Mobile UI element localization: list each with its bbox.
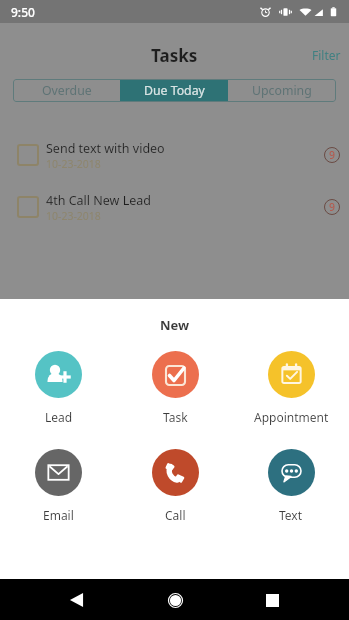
- staticText: Send text with video: [46, 140, 165, 157]
- button[interactable]: Filter: [304, 47, 349, 63]
- staticText: New: [0, 316, 349, 334]
- button[interactable]: Lead: [0, 351, 117, 425]
- button[interactable]: Call: [117, 449, 233, 523]
- staticText: Call: [165, 507, 186, 523]
- staticText: 10-23-2018: [46, 157, 101, 171]
- staticText: 4th Call New Lead: [46, 192, 151, 209]
- button[interactable]: Home: [161, 586, 189, 614]
- button[interactable]: 4th Call New Lead: [0, 181, 349, 233]
- staticText: Overdue: [42, 82, 92, 99]
- staticText: Tasks: [151, 44, 198, 67]
- staticText: Lead: [45, 409, 73, 425]
- staticText: 9: [329, 200, 336, 214]
- button[interactable]: Send text with video: [0, 129, 349, 181]
- button[interactable]: Task: [117, 351, 233, 425]
- staticText: Appointment: [254, 409, 329, 425]
- button[interactable]: Overdue: [13, 79, 120, 102]
- button[interactable]: Recent apps: [258, 586, 286, 614]
- button[interactable]: Upcoming: [228, 79, 336, 102]
- button[interactable]: Back: [63, 586, 91, 614]
- staticText: Due Today: [144, 82, 205, 99]
- staticText: 9:50: [11, 4, 35, 20]
- staticText: Text: [279, 507, 303, 523]
- button[interactable]: Due Today: [120, 79, 228, 102]
- staticText: Upcoming: [252, 82, 312, 99]
- staticText: Task: [163, 409, 188, 425]
- staticText: Filter: [312, 47, 341, 63]
- staticText: 10-23-2018: [46, 209, 101, 223]
- button[interactable]: Email: [0, 449, 117, 523]
- staticText: 9: [329, 148, 336, 162]
- button[interactable]: Appointment: [233, 351, 349, 425]
- button[interactable]: Text: [233, 449, 349, 523]
- staticText: Email: [43, 507, 74, 523]
